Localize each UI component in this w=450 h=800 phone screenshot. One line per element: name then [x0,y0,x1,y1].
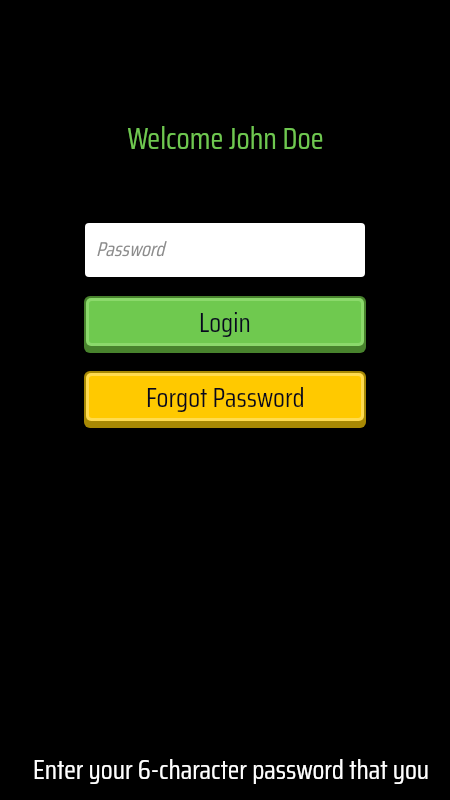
staticText: Forgot Password [146,376,305,418]
staticText: Welcome John Doe [127,115,324,162]
button[interactable]: Login [84,296,366,353]
staticText: Enter your 6-character password that you… [33,748,433,800]
staticText: Password [96,233,165,264]
button[interactable]: Password [85,223,365,277]
button[interactable]: Forgot Password [84,371,366,428]
staticText: Login [199,301,251,343]
